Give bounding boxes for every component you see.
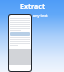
staticText: and edit any text: [16, 13, 48, 18]
staticText: Extract: [20, 2, 45, 12]
